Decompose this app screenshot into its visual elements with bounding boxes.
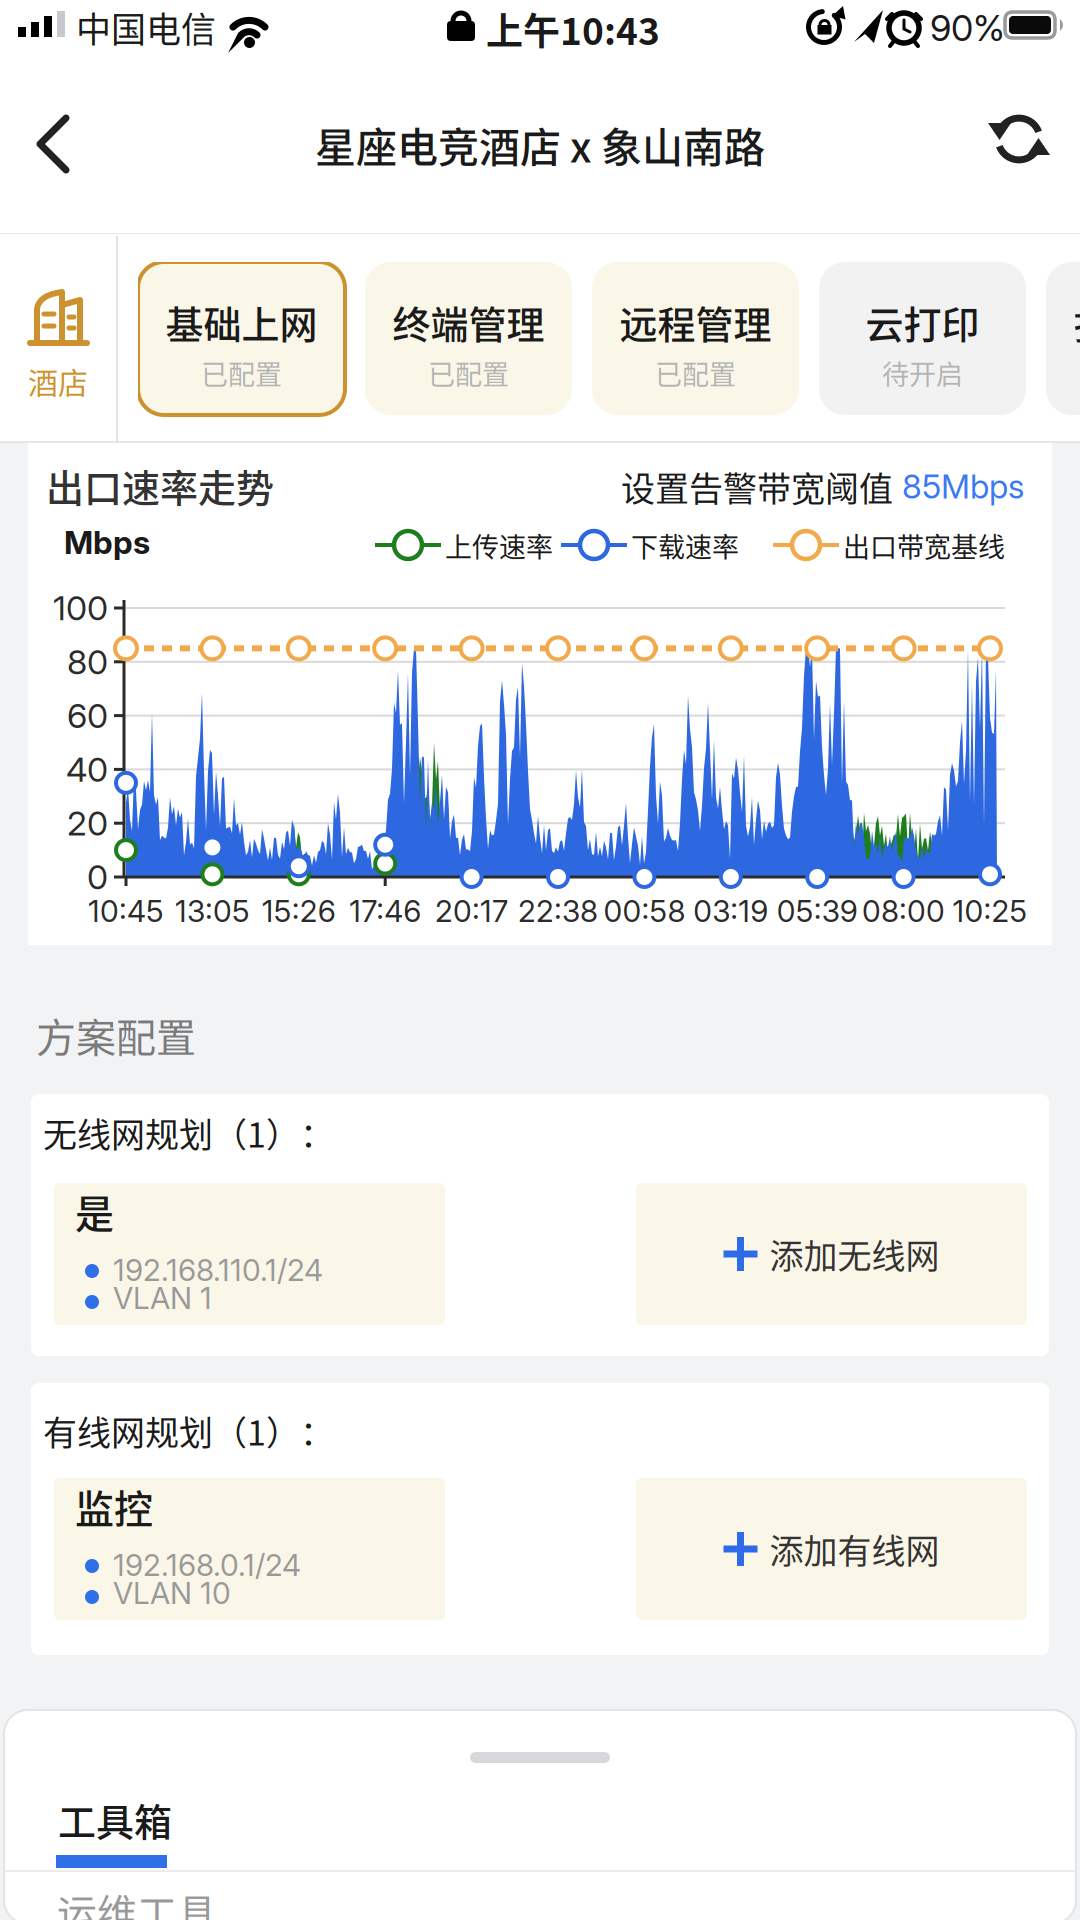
button[interactable]: 酒店: [0, 234, 116, 441]
button[interactable]: 远程管理: [592, 262, 799, 415]
staticText: 08:00: [862, 893, 945, 929]
staticText: 扫码入住: [1073, 294, 1080, 349]
staticText: 下载速率: [631, 526, 739, 565]
staticText: 基础上网: [165, 294, 317, 349]
staticText: 10:45: [88, 893, 164, 929]
staticText: 设置告警带宽阈值: [621, 462, 893, 511]
button[interactable]: 设置告警带宽阈值: [0, 462, 1024, 511]
staticText: 03:19: [693, 893, 768, 929]
button[interactable]: 监控: [54, 1478, 445, 1620]
button[interactable]: 工具箱: [56, 1792, 236, 1872]
staticText: 15:26: [262, 893, 336, 929]
button[interactable]: 终端管理: [365, 262, 572, 415]
staticText: 添加有线网: [769, 1524, 939, 1574]
staticText: 20:17: [435, 893, 508, 929]
staticText: 终端管理: [392, 294, 544, 349]
staticText: 100: [53, 587, 108, 628]
staticText: 无线网规划（1）：: [43, 1108, 334, 1157]
staticText: 80: [67, 641, 108, 682]
staticText: 90%: [930, 6, 1005, 50]
staticText: 工具箱: [58, 1792, 172, 1847]
staticText: 20: [67, 803, 108, 844]
staticText: VLAN 10: [113, 1575, 231, 1611]
staticText: 已配置: [655, 353, 736, 393]
staticText: 是: [75, 1183, 114, 1239]
staticText: 0: [87, 856, 108, 897]
staticText: 添加无线网: [769, 1229, 939, 1279]
staticText: 192.168.110.1/24: [113, 1252, 323, 1288]
staticText: 出口速率走势: [46, 458, 274, 513]
staticText: 85Mbps: [893, 467, 1024, 507]
staticText: 出口带宽基线: [843, 526, 1005, 565]
staticText: 上午10:43: [486, 2, 660, 56]
staticText: 192.168.0.1/24: [113, 1547, 301, 1583]
staticText: 已配置: [201, 353, 282, 393]
staticText: 待开启: [882, 353, 963, 393]
staticText: 星座电竞酒店 x 象山南路: [315, 115, 765, 174]
staticText: 方案配置: [36, 1006, 196, 1064]
staticText: 17:46: [349, 893, 421, 929]
button[interactable]: 是: [54, 1183, 445, 1325]
staticText: 运维工具: [57, 1882, 217, 1920]
staticText: 60: [67, 695, 108, 736]
button[interactable]: Back: [26, 92, 92, 196]
staticText: 已配置: [428, 353, 509, 393]
staticText: 10:25: [952, 893, 1027, 929]
staticText: 远程管理: [619, 294, 771, 349]
staticText: 40: [66, 749, 108, 790]
staticText: 13:05: [175, 893, 250, 929]
staticText: 监控: [75, 1478, 153, 1534]
staticText: 22:38: [518, 893, 598, 929]
button[interactable]: 云打印: [819, 262, 1026, 415]
button[interactable]: 添加有线网: [636, 1478, 1027, 1620]
staticText: 上传速率: [445, 526, 553, 565]
staticText: 00:58: [603, 893, 685, 929]
staticText: 中国电信: [76, 2, 216, 53]
staticText: 有线网规划（1）：: [43, 1406, 334, 1455]
staticText: 酒店: [28, 359, 88, 402]
staticText: 云打印: [865, 294, 979, 349]
staticText: Mbps: [64, 523, 150, 562]
button[interactable]: 基础上网: [138, 262, 345, 415]
button[interactable]: 扫码入住: [1046, 262, 1080, 415]
staticText: VLAN 1: [113, 1280, 212, 1316]
button[interactable]: Refresh: [977, 97, 1061, 181]
button[interactable]: 添加无线网: [636, 1183, 1027, 1325]
staticText: 05:39: [777, 893, 858, 929]
